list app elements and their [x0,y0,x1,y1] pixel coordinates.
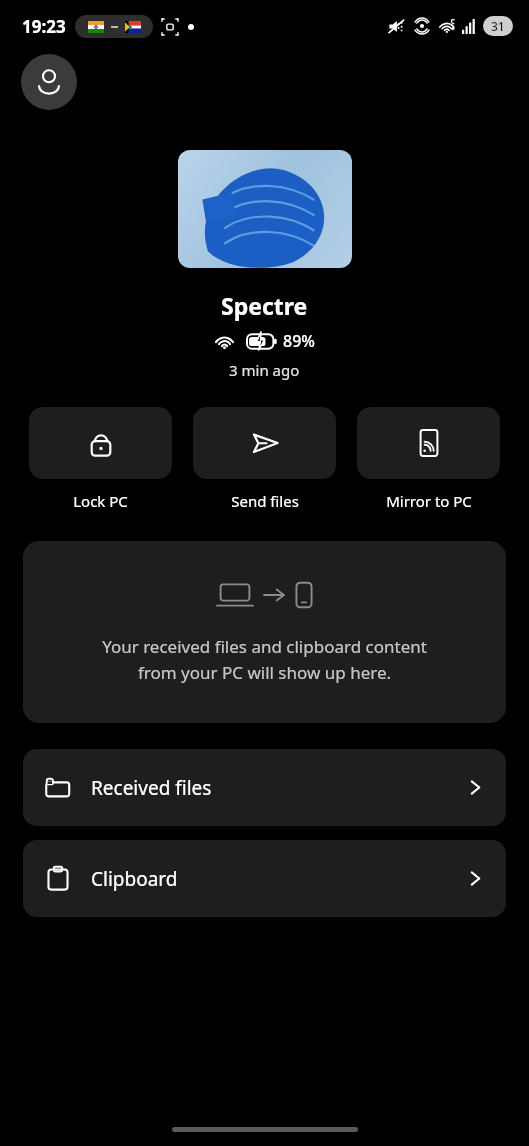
button[interactable]: Received files [23,749,506,826]
staticText: 89% [283,330,315,352]
button[interactable]: PC wallpaper [178,150,352,268]
staticText: Mirror to PC [386,491,472,511]
button[interactable]: Send files [193,407,336,511]
staticText: 31 [491,18,505,34]
button[interactable]: Lock PC [29,407,172,511]
staticText: 19:23 [22,15,66,38]
staticText: Spectre [221,290,308,321]
button[interactable]: Account [21,54,77,110]
staticText: Lock PC [73,491,128,511]
staticText: Send files [231,491,299,511]
button[interactable]: Mirror to PC [357,407,500,511]
button[interactable]: Your received files and clipboard conten… [23,541,506,723]
staticText: Received files [91,775,212,801]
button[interactable]: Clipboard [23,840,506,917]
staticText: Clipboard [91,866,178,892]
staticText: Your received files and clipboard conten… [102,635,427,684]
staticText: 3 min ago [229,360,300,380]
